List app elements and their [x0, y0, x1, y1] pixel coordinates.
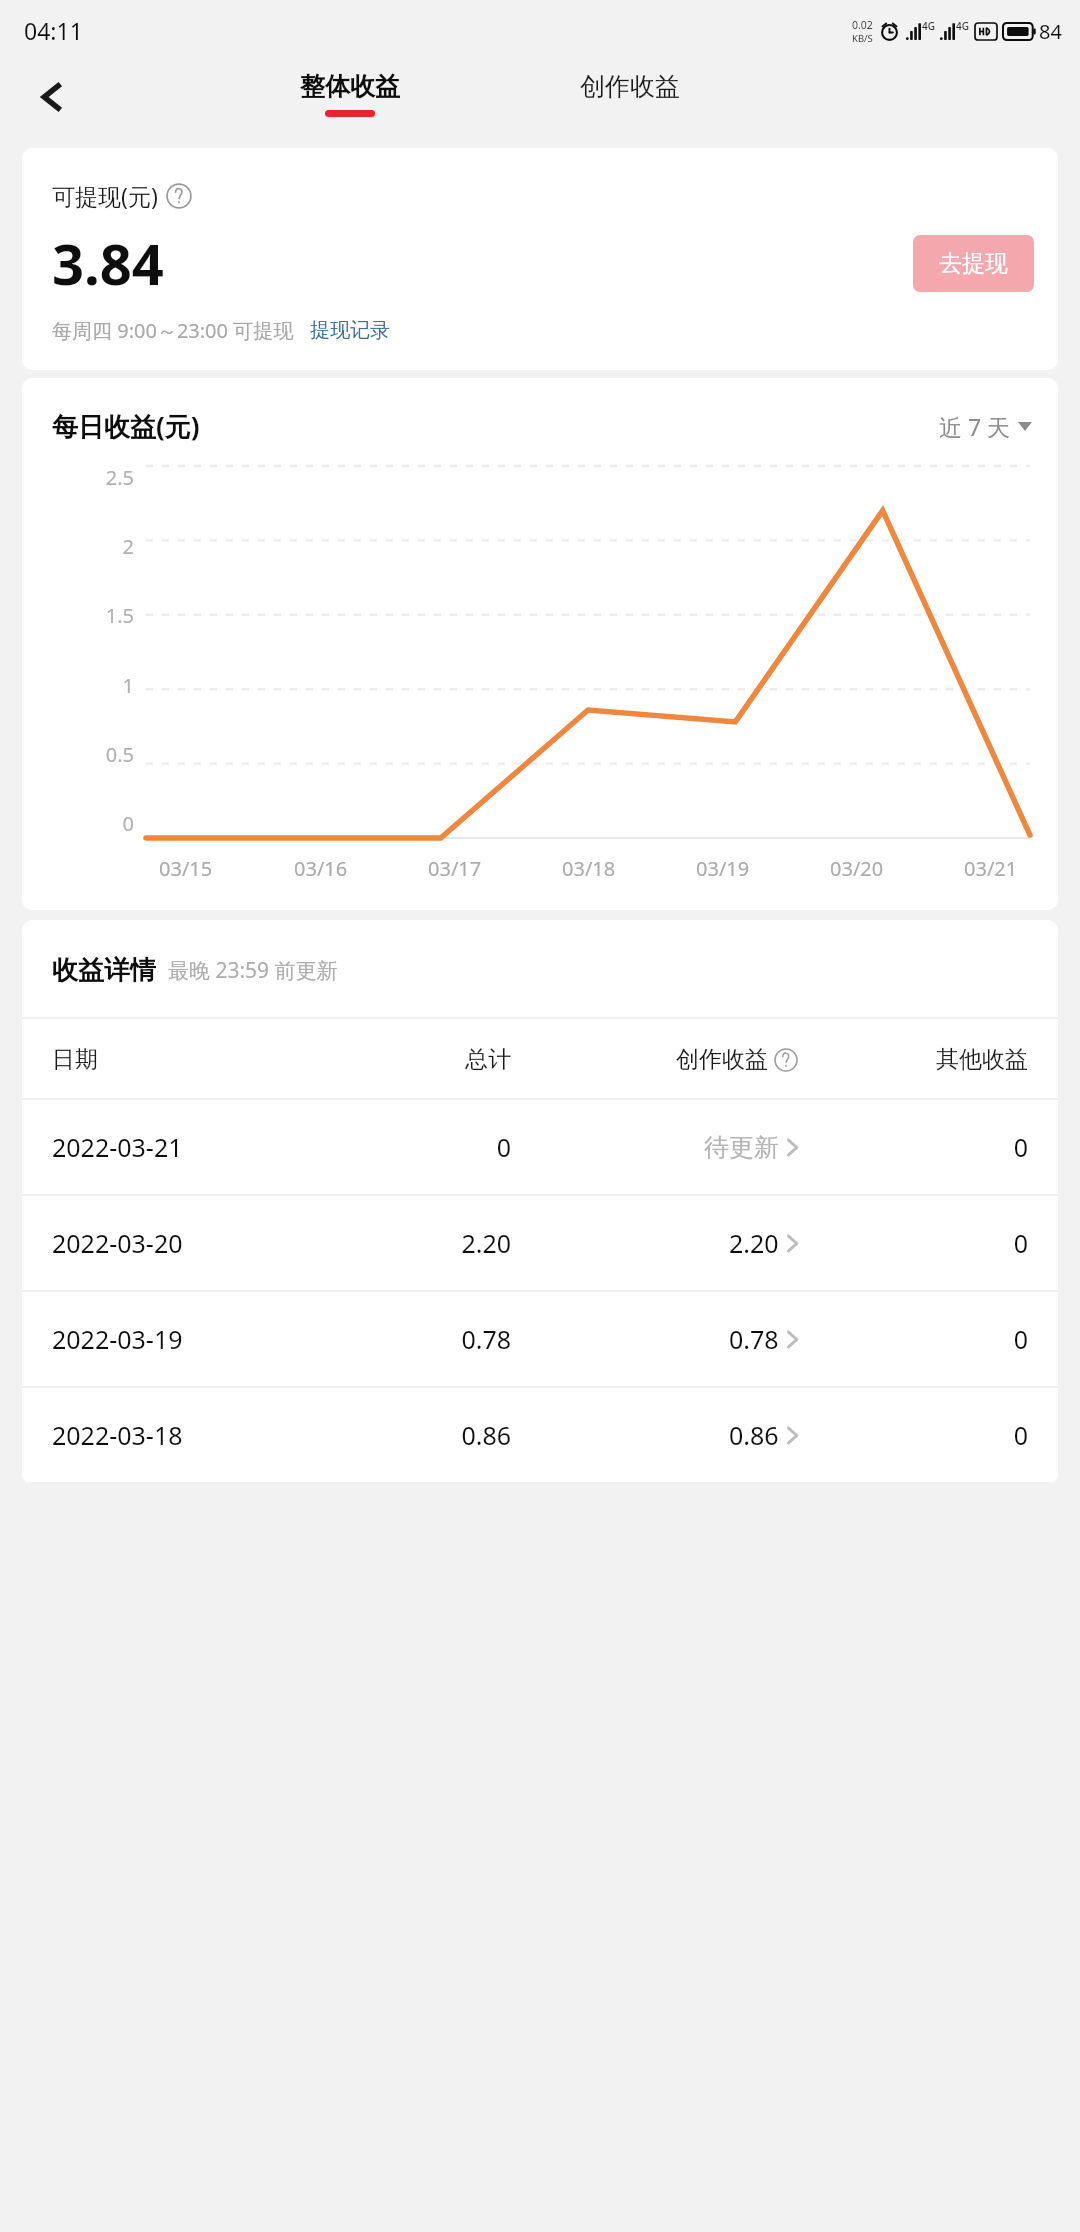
- button[interactable]: 2022-03-21: [22, 1100, 1058, 1194]
- staticText: 0.02: [852, 18, 873, 32]
- button[interactable]: 2022-03-20: [22, 1196, 1058, 1290]
- staticText: 4G: [956, 19, 969, 33]
- staticText: 2022-03-20: [52, 1226, 316, 1260]
- staticText: 0.78: [729, 1322, 779, 1356]
- button[interactable]: 近 7 天: [939, 411, 1032, 442]
- staticText: KB/S: [852, 32, 873, 45]
- staticText: 2.20: [729, 1226, 779, 1260]
- staticText: 03/16: [294, 855, 348, 882]
- staticText: 整体收益: [300, 71, 400, 102]
- staticText: 0.86: [316, 1418, 511, 1452]
- staticText: 待更新: [704, 1132, 779, 1163]
- staticText: 1: [22, 672, 134, 698]
- staticText: 03/17: [428, 855, 482, 882]
- button[interactable]: 提现记录: [310, 318, 390, 343]
- staticText: 2: [22, 533, 134, 559]
- staticText: 2022-03-21: [52, 1130, 316, 1164]
- staticText: 0.5: [22, 741, 134, 767]
- staticText: 84: [1039, 18, 1062, 45]
- button[interactable]: 2022-03-19: [22, 1292, 1058, 1386]
- staticText: 0: [798, 1322, 1028, 1356]
- button[interactable]: 去提现: [913, 235, 1034, 292]
- staticText: 日期: [52, 1045, 316, 1074]
- staticText: 2.20: [316, 1226, 511, 1260]
- staticText: 0: [798, 1418, 1028, 1452]
- staticText: 近 7 天: [939, 411, 1011, 442]
- staticText: 2022-03-19: [52, 1322, 316, 1356]
- staticText: 2.5: [22, 464, 134, 490]
- staticText: 03/18: [562, 855, 616, 882]
- button[interactable]: 整体收益: [290, 71, 410, 117]
- staticText: 04:11: [24, 15, 83, 46]
- button[interactable]: 2022-03-18: [22, 1388, 1058, 1482]
- staticText: 收益详情: [52, 954, 156, 987]
- staticText: 0: [22, 810, 134, 836]
- staticText: 0: [798, 1130, 1028, 1164]
- staticText: 3.84: [52, 225, 164, 301]
- staticText: 去提现: [939, 249, 1008, 278]
- staticText: 1.5: [22, 602, 134, 628]
- staticText: 03/19: [696, 855, 750, 882]
- staticText: 03/21: [964, 855, 1018, 882]
- staticText: 2022-03-18: [52, 1418, 316, 1452]
- staticText: 每周四 9:00～23:00 可提现: [52, 317, 294, 344]
- staticText: 总计: [316, 1045, 511, 1074]
- staticText: 0.86: [729, 1418, 779, 1452]
- staticText: 创作收益: [676, 1045, 768, 1074]
- staticText: 其他收益: [798, 1045, 1028, 1074]
- staticText: 03/15: [159, 855, 213, 882]
- staticText: 每日收益(元): [52, 408, 200, 444]
- staticText: 03/20: [830, 855, 884, 882]
- staticText: 0.78: [316, 1322, 511, 1356]
- button[interactable]: Back: [24, 69, 80, 125]
- staticText: 0: [798, 1226, 1028, 1260]
- staticText: 可提现(元): [52, 180, 158, 211]
- staticText: 最晚 23:59 前更新: [168, 956, 338, 985]
- button[interactable]: Help about withdrawable: [166, 183, 192, 209]
- button[interactable]: 创作收益: [570, 71, 690, 102]
- staticText: 4G: [922, 19, 935, 33]
- staticText: 0: [316, 1130, 511, 1164]
